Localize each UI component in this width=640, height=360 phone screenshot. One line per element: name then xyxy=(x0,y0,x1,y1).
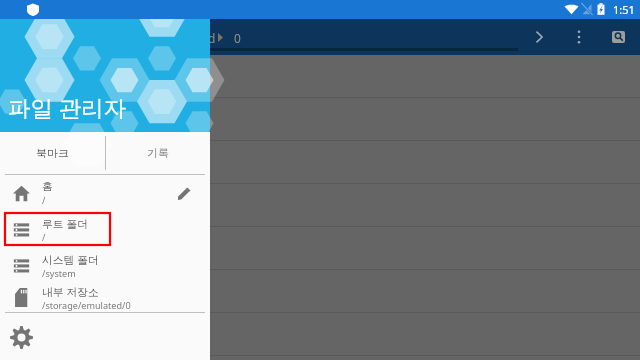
staticText: 파일 관리자 xyxy=(8,92,127,123)
button[interactable]: More options xyxy=(565,23,593,51)
button[interactable]: 시스템 폴더 xyxy=(0,247,210,283)
button[interactable]: 루트 폴더 xyxy=(0,211,210,247)
staticText: 북마크 xyxy=(36,146,69,160)
staticText: 루트 폴더 xyxy=(42,216,88,231)
staticText: d xyxy=(208,30,216,46)
button[interactable]: 내부 저장소 xyxy=(0,283,210,312)
button[interactable]: Edit xyxy=(170,179,198,207)
staticText: / xyxy=(42,194,46,206)
staticText: 시스템 폴더 xyxy=(42,252,99,267)
button[interactable]: Settings xyxy=(0,313,210,360)
staticText: /storage/emulated/0 xyxy=(42,299,131,311)
button[interactable]: 홈 xyxy=(0,175,210,211)
button[interactable]: Search xyxy=(612,31,625,43)
staticText: / xyxy=(42,231,46,243)
staticText: 홈 xyxy=(42,180,53,194)
button[interactable]: 기록 xyxy=(105,132,210,174)
staticText: 0 xyxy=(234,30,241,46)
staticText: 기록 xyxy=(147,146,169,160)
button[interactable]: Next xyxy=(525,23,553,51)
staticText: /system xyxy=(42,267,76,279)
staticText: 1:51 xyxy=(613,2,635,17)
button[interactable]: 북마크 xyxy=(0,132,105,174)
staticText: 내부 저장소 xyxy=(42,284,99,299)
